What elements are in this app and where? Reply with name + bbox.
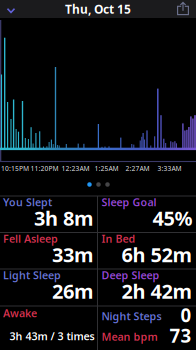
button[interactable]: Change date [0, 0, 22, 18]
staticText: 12:23AM [61, 164, 89, 173]
button[interactable]: Share [174, 0, 192, 18]
staticText: 1:25AM [94, 164, 118, 173]
staticText: 3h 43m / 3 times [9, 329, 94, 343]
staticText: Deep Sleep [101, 268, 159, 282]
staticText: 0 [180, 303, 191, 327]
staticText: 6h 52m [121, 241, 192, 268]
staticText: 3h 8m [34, 205, 94, 231]
staticText: 2:27AM [125, 164, 149, 173]
staticText: Light Sleep [3, 268, 61, 282]
staticText: 73 [169, 323, 191, 348]
staticText: 2h 42m [121, 278, 192, 304]
staticText: 45% [152, 205, 192, 231]
staticText: Awake [3, 306, 37, 320]
button[interactable]: Page 1 of 3 [77, 178, 120, 191]
staticText: 33m [52, 241, 94, 268]
staticText: Night Steps [101, 309, 161, 323]
staticText: 10:15PM [1, 164, 29, 173]
staticText: You Slept [3, 195, 52, 209]
staticText: Mean bpm [101, 329, 157, 344]
staticText: 26m [52, 278, 94, 304]
staticText: Sleep Goal [101, 195, 156, 209]
staticText: Fell Asleep [3, 232, 58, 246]
staticText: 11:20PM [30, 164, 58, 173]
staticText: 3:33AM [157, 164, 181, 173]
staticText: Thu, Oct 15 [65, 1, 131, 17]
staticText: In Bed [101, 232, 135, 246]
